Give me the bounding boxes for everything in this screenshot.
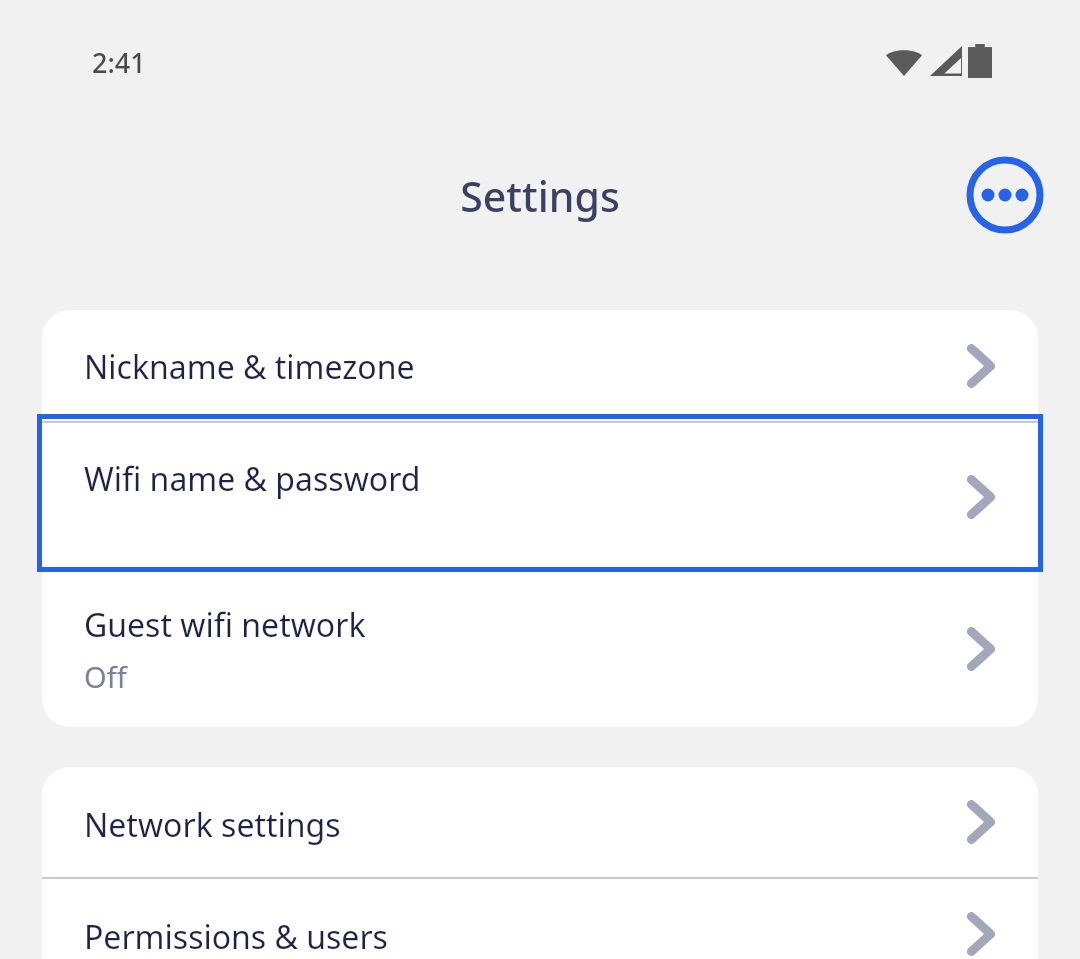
button[interactable]: More options [962,152,1048,238]
button[interactable]: Nickname & timezone [42,310,1038,421]
button[interactable]: Permissions & users [42,879,1038,959]
staticText: Nickname & timezone [84,345,415,389]
staticText: Network settings [84,803,341,847]
button[interactable]: Network settings [42,767,1038,877]
staticText: 2:41 [92,44,146,81]
button[interactable]: Wifi name & password [42,423,1038,571]
staticText: Settings [0,168,1080,224]
staticText: Off [84,657,127,696]
staticText: Wifi name & password [84,457,421,501]
staticText: Guest wifi network [84,603,366,647]
staticText: Permissions & users [84,915,388,959]
button[interactable]: Guest wifi network [42,571,1038,727]
